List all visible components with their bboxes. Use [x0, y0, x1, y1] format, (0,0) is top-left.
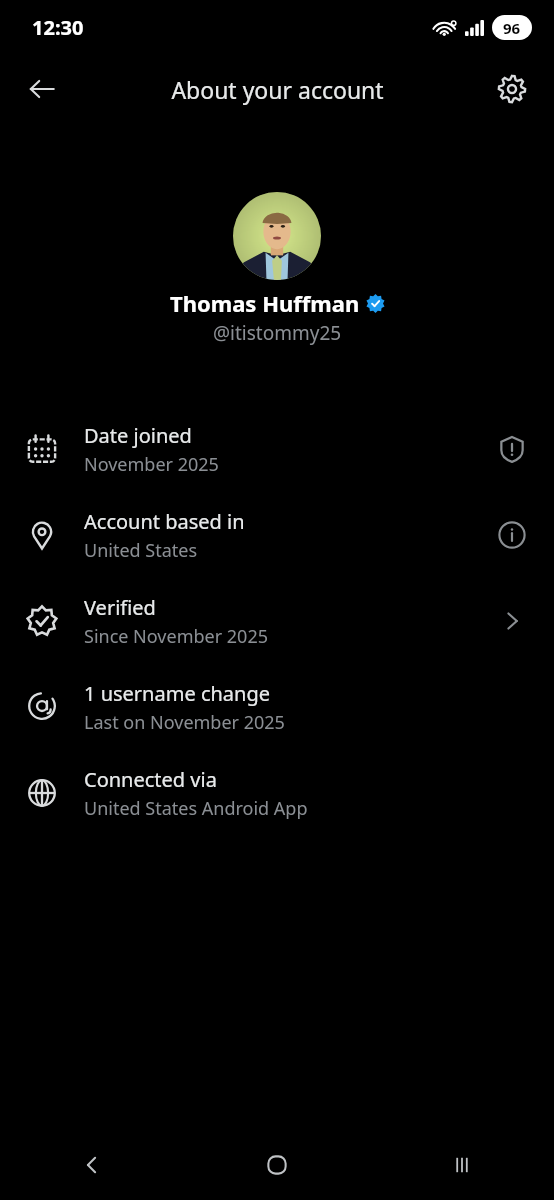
button[interactable]: Settings: [486, 63, 538, 115]
button[interactable]: Account warning info: [492, 429, 532, 469]
staticText: Last on November 2025: [84, 710, 285, 735]
button[interactable]: Connected via: [0, 750, 554, 836]
staticText: 12:30: [32, 14, 84, 41]
staticText: November 2025: [84, 452, 219, 477]
staticText: Thomas Huffman: [170, 288, 360, 318]
button[interactable]: Recent apps: [369, 1130, 554, 1200]
staticText: 96: [503, 18, 521, 38]
staticText: Account based in: [84, 508, 245, 535]
button[interactable]: Account based in: [0, 492, 554, 578]
staticText: Verified: [84, 594, 156, 621]
button[interactable]: Date joined: [0, 406, 554, 492]
staticText: United States: [84, 538, 198, 563]
staticText: @itistommy25: [213, 320, 342, 346]
staticText: United States Android App: [84, 796, 308, 821]
staticText: Date joined: [84, 422, 192, 449]
button[interactable]: Back: [16, 63, 68, 115]
button[interactable]: Profile photo: [233, 192, 321, 280]
button[interactable]: 1 username change: [0, 664, 554, 750]
staticText: Connected via: [84, 766, 217, 793]
button[interactable]: Back: [0, 1130, 184, 1200]
staticText: Since November 2025: [84, 624, 268, 649]
button[interactable]: Open verified details: [492, 601, 532, 641]
button[interactable]: About account location: [492, 515, 532, 555]
staticText: About your account: [171, 74, 384, 105]
button[interactable]: Verified: [0, 578, 554, 664]
staticText: 1 username change: [84, 680, 270, 707]
button[interactable]: Home: [184, 1130, 369, 1200]
